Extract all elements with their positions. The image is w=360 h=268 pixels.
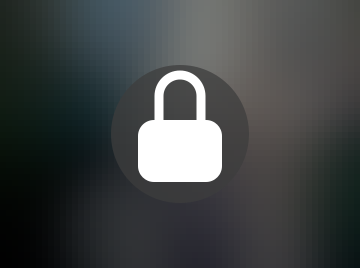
button[interactable]: Unlock content — [0, 0, 360, 268]
